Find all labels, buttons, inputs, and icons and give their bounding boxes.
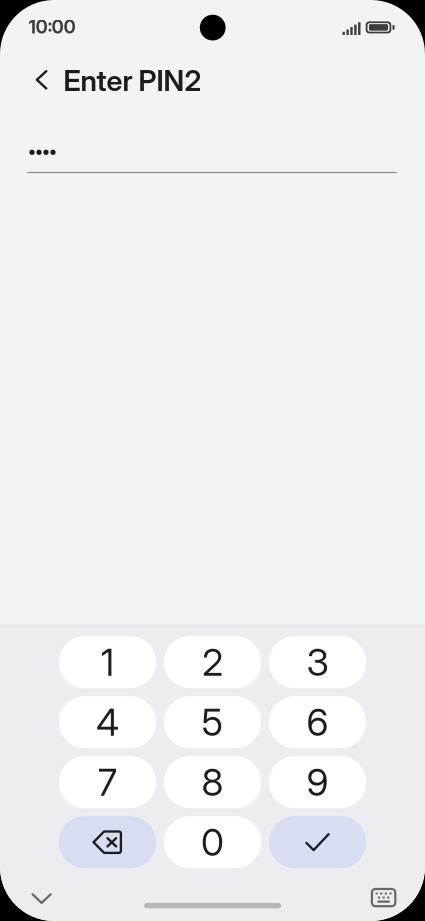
staticText: 3 — [306, 640, 328, 685]
button[interactable]: Change keyboard — [364, 880, 404, 916]
staticText: 4 — [96, 700, 119, 745]
staticText: 7 — [97, 760, 117, 805]
button[interactable]: Delete — [59, 816, 156, 868]
button[interactable]: Confirm — [269, 816, 366, 868]
button[interactable]: 6 — [269, 696, 366, 748]
staticText: 8 — [201, 760, 223, 805]
button[interactable]: 5 — [164, 696, 261, 748]
staticText: 0 — [201, 820, 224, 865]
staticText: 5 — [201, 700, 223, 745]
button[interactable]: 8 — [164, 756, 261, 808]
staticText: 9 — [306, 760, 328, 805]
button[interactable]: 4 — [59, 696, 156, 748]
button[interactable]: 9 — [269, 756, 366, 808]
button[interactable]: 7 — [59, 756, 156, 808]
button[interactable]: 3 — [269, 636, 366, 688]
staticText: 10:00 — [29, 16, 76, 38]
button[interactable]: 0 — [164, 816, 261, 868]
button[interactable]: Back — [21, 58, 63, 102]
staticText: 2 — [202, 640, 223, 685]
button[interactable]: Hide keyboard — [20, 881, 64, 917]
button[interactable]: Enter PIN2 — [63, 59, 243, 103]
staticText: 6 — [306, 700, 328, 745]
button[interactable]: 1 — [59, 636, 156, 688]
staticText: Enter PIN2 — [63, 63, 201, 98]
staticText: 1 — [100, 640, 114, 685]
button[interactable]: 2 — [164, 636, 261, 688]
